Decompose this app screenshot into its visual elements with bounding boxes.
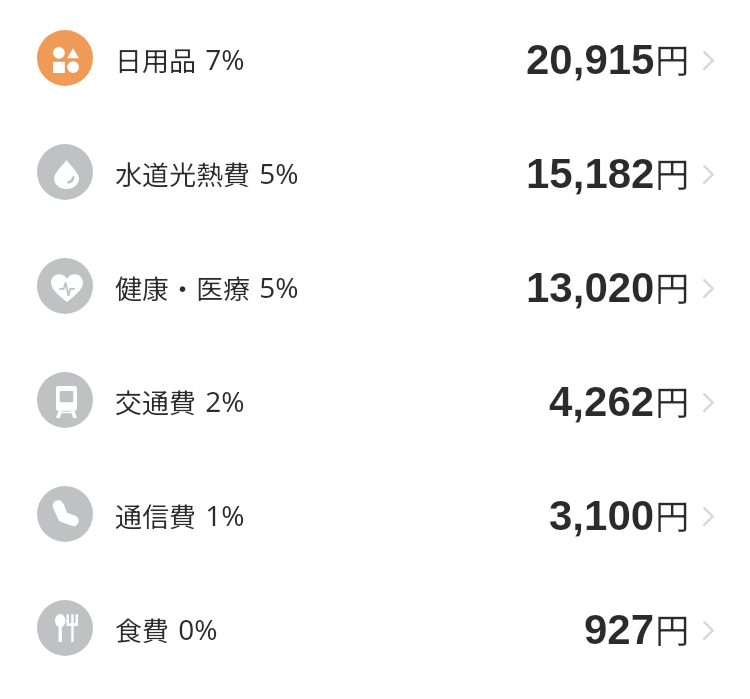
staticText: 1% <box>198 496 245 534</box>
staticText: 食費 <box>115 610 169 649</box>
staticText: 円 <box>655 262 689 311</box>
staticText: 4,262 <box>549 378 655 425</box>
staticText: 円 <box>655 490 689 539</box>
button[interactable]: 日用品 <box>0 1 750 115</box>
other: 詳細を表示 <box>693 486 723 542</box>
other: 詳細を表示 <box>693 600 723 656</box>
other: 詳細を表示 <box>693 258 723 314</box>
staticText: 5% <box>252 268 299 306</box>
staticText: 円 <box>655 604 689 653</box>
staticText: 2% <box>198 382 245 420</box>
other: 詳細を表示 <box>693 372 723 428</box>
button[interactable]: 通信費 <box>0 457 750 571</box>
staticText: 0% <box>171 610 218 648</box>
staticText: 日用品 <box>115 40 196 79</box>
staticText: 5% <box>252 154 299 192</box>
staticText: 20,915 <box>526 36 655 83</box>
button[interactable]: 水道光熱費 <box>0 115 750 229</box>
staticText: 7% <box>198 40 245 78</box>
staticText: 通信費 <box>115 496 196 535</box>
staticText: 円 <box>655 376 689 425</box>
staticText: 15,182 <box>526 150 655 197</box>
staticText: 健康・医療 <box>115 268 250 307</box>
other: 詳細を表示 <box>693 30 723 86</box>
staticText: 3,100 <box>549 492 655 539</box>
staticText: 円 <box>655 148 689 197</box>
button[interactable]: 食費 <box>0 571 750 685</box>
other: 詳細を表示 <box>693 144 723 200</box>
staticText: 交通費 <box>115 382 196 421</box>
staticText: 円 <box>655 34 689 83</box>
staticText: 水道光熱費 <box>115 154 250 193</box>
staticText: 13,020 <box>526 264 655 311</box>
staticText: 927 <box>584 606 655 653</box>
button[interactable]: 健康・医療 <box>0 229 750 343</box>
button[interactable]: 交通費 <box>0 343 750 457</box>
